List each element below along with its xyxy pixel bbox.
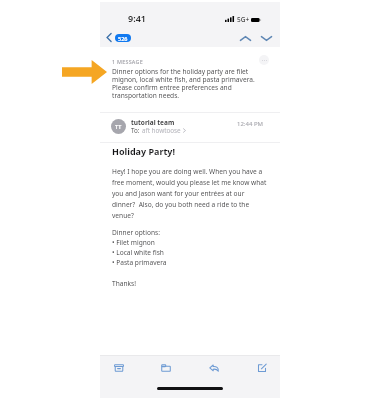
- staticText: 526: [118, 35, 128, 42]
- staticText: aft howtoose: [142, 126, 181, 135]
- staticText: 12:44 PM: [237, 120, 263, 128]
- staticText: 5G+: [237, 15, 250, 24]
- staticText: Thanks!: [112, 278, 136, 289]
- button[interactable]: Next message: [259, 31, 274, 46]
- button[interactable]: Move to folder: [154, 356, 178, 380]
- other: Back: [106, 33, 112, 42]
- staticText: To:: [131, 126, 142, 135]
- button[interactable]: More options: [259, 55, 269, 65]
- staticText: Dinner options for the holiday party are…: [112, 68, 255, 100]
- staticText: Dinner options: • Filet mignon • Local w…: [112, 228, 268, 268]
- staticText: 1 MESSAGE: [112, 58, 143, 65]
- staticText: TT: [115, 123, 122, 130]
- button[interactable]: Back: [106, 33, 131, 42]
- staticText: 9:41: [128, 12, 146, 24]
- staticText: Holiday Party!: [112, 145, 176, 157]
- button[interactable]: Previous message: [238, 31, 253, 46]
- button[interactable]: Compose: [250, 356, 274, 380]
- button[interactable]: Reply: [202, 356, 226, 380]
- staticText: tutorial team: [131, 118, 175, 127]
- staticText: Hey! I hope you are doing well. When you…: [112, 166, 268, 221]
- button[interactable]: Archive: [107, 356, 131, 380]
